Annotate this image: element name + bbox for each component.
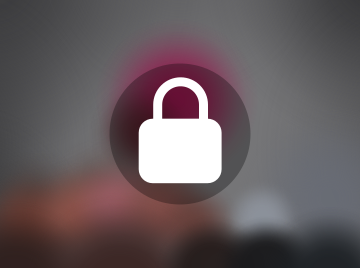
button[interactable]: Locked: [0, 0, 360, 268]
